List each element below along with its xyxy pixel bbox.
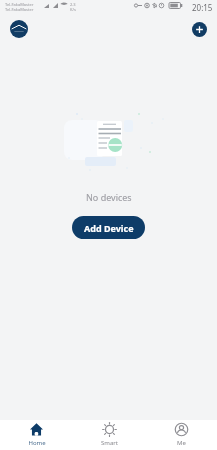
staticText: Tel-FakaMaster [5, 7, 34, 12]
button[interactable]: Add device [192, 22, 207, 37]
button[interactable]: Me [145, 420, 217, 450]
staticText: Home [28, 439, 46, 447]
staticText: 20:15 [192, 2, 213, 13]
staticText: Tel-FakaMaster [5, 2, 34, 7]
staticText: K/s [70, 7, 76, 12]
button[interactable]: Petcare logo [10, 20, 28, 38]
button[interactable]: Smart [73, 420, 145, 450]
staticText: Me [177, 439, 186, 447]
button[interactable]: Add Device [72, 216, 145, 239]
staticText: Add Device [84, 222, 134, 234]
staticText: Smart [101, 439, 118, 447]
staticText: 2.3 [70, 2, 76, 7]
staticText: No devices [86, 191, 132, 203]
button[interactable]: Home [0, 420, 73, 450]
